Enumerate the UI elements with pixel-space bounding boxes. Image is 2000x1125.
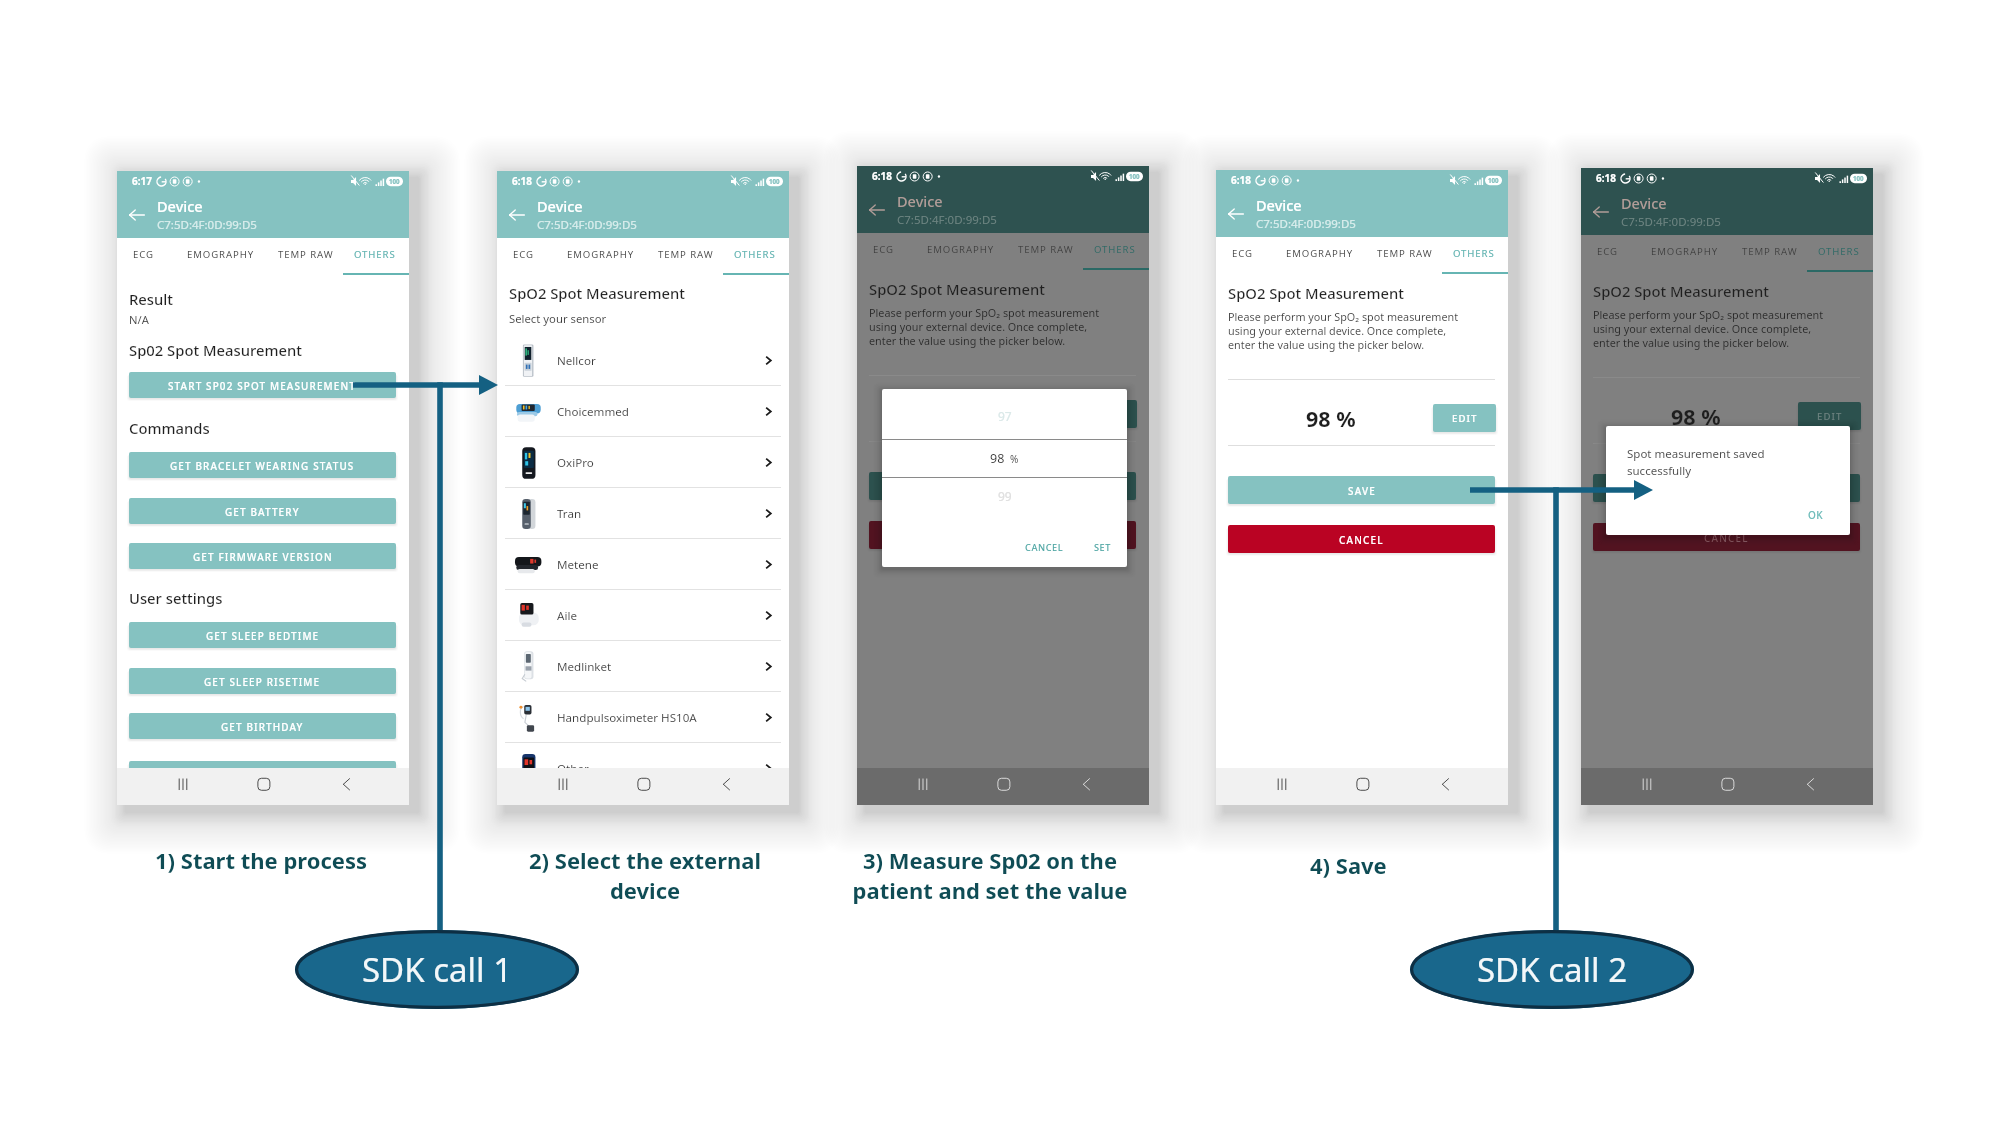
button[interactable]: OTHERS: [1805, 235, 1873, 268]
button[interactable]: Back: [125, 203, 149, 227]
staticText: Device: [897, 191, 943, 211]
staticText: GET BIRTHDAY: [221, 720, 304, 733]
button[interactable]: Home: [955, 768, 1052, 805]
staticText: SpO2 Spot Measurement: [509, 283, 686, 303]
button[interactable]: Other: [497, 743, 789, 794]
button[interactable]: Back: [505, 203, 529, 227]
button[interactable]: OTHERS: [721, 238, 789, 271]
button[interactable]: Recent apps: [857, 768, 955, 805]
button[interactable]: Home: [595, 768, 692, 805]
button[interactable]: SDK call 1: [295, 930, 579, 1009]
staticText: ECG: [1232, 247, 1253, 260]
button[interactable]: CANCEL: [1593, 523, 1860, 551]
button[interactable]: EDIT: [1798, 402, 1861, 430]
staticText: Other: [557, 761, 589, 777]
button[interactable]: TEMP RAW: [271, 238, 341, 271]
button[interactable]: ECG: [117, 238, 170, 271]
button[interactable]: OxiPro: [497, 437, 789, 488]
button[interactable]: Recent apps: [1581, 768, 1679, 805]
button[interactable]: Nellcor: [497, 335, 789, 386]
staticText: 97: [998, 408, 1012, 424]
button[interactable]: CANCEL: [869, 521, 1136, 549]
button[interactable]: EMOGRAPHY: [550, 238, 651, 271]
button[interactable]: GET FIRMWARE VERSION: [129, 543, 396, 569]
button[interactable]: CANCEL: [1228, 525, 1495, 553]
staticText: OK: [1808, 508, 1824, 522]
button[interactable]: Metene: [497, 539, 789, 590]
staticText: OTHERS: [1818, 245, 1860, 258]
button[interactable]: OK: [1808, 508, 1824, 522]
button[interactable]: OTHERS: [341, 238, 409, 271]
button[interactable]: Medlinket: [497, 641, 789, 692]
button[interactable]: EDIT: [1433, 404, 1496, 432]
button[interactable]: TEMP RAW: [651, 238, 721, 271]
staticText: OTHERS: [734, 248, 776, 261]
staticText: Result: [129, 289, 173, 309]
button[interactable]: Home: [1679, 768, 1776, 805]
button[interactable]: Recent apps: [497, 768, 595, 805]
staticText: 4) Save: [1310, 850, 1387, 880]
button[interactable]: GET BIRTHDAY: [129, 713, 396, 739]
button[interactable]: Recent apps: [1216, 768, 1314, 805]
button[interactable]: OTHERS: [1440, 237, 1508, 270]
button[interactable]: Handpulsoximeter HS10A: [497, 692, 789, 743]
button[interactable]: Back: [692, 768, 789, 805]
button[interactable]: EDIT: [1074, 400, 1137, 428]
button[interactable]: Choicemmed: [497, 386, 789, 437]
staticText: 6:17: [132, 174, 152, 188]
button[interactable]: Back: [1224, 202, 1248, 226]
button[interactable]: SAVE: [869, 472, 1136, 500]
button[interactable]: Back: [865, 198, 889, 222]
button[interactable]: ECG: [1216, 237, 1269, 270]
button[interactable]: Back: [1589, 200, 1613, 224]
staticText: Nellcor: [557, 353, 596, 369]
button[interactable]: GET: [129, 761, 396, 787]
staticText: EMOGRAPHY: [567, 248, 635, 261]
button[interactable]: GET SLEEP RISETIME: [129, 668, 396, 694]
staticText: 6:18: [872, 169, 892, 183]
button[interactable]: Back: [312, 768, 409, 805]
button[interactable]: Back: [1052, 768, 1149, 805]
staticText: 100: [389, 177, 400, 185]
button[interactable]: SAVE: [1593, 474, 1860, 502]
button[interactable]: EMOGRAPHY: [1634, 235, 1735, 268]
button[interactable]: GET BRACELET WEARING STATUS: [129, 452, 396, 478]
button[interactable]: START SP02 SPOT MEASUREMENT: [129, 372, 396, 398]
staticText: Commands: [129, 418, 210, 438]
staticText: OxiPro: [557, 455, 594, 471]
button[interactable]: EMOGRAPHY: [170, 238, 271, 271]
button[interactable]: Tran: [497, 488, 789, 539]
button[interactable]: EMOGRAPHY: [910, 233, 1011, 266]
button[interactable]: SET: [1094, 541, 1111, 554]
button[interactable]: TEMP RAW: [1370, 237, 1440, 270]
staticText: 1) Start the process: [155, 845, 368, 875]
button[interactable]: Recent apps: [117, 768, 215, 805]
staticText: SAVE: [989, 480, 1017, 493]
staticText: Please perform your SpO₂ spot measuremen…: [1228, 309, 1459, 352]
button[interactable]: CANCEL: [1025, 541, 1064, 554]
button[interactable]: Back: [1411, 768, 1508, 805]
button[interactable]: TEMP RAW: [1735, 235, 1805, 268]
button[interactable]: Home: [1314, 768, 1411, 805]
button[interactable]: Aile: [497, 590, 789, 641]
button[interactable]: OTHERS: [1081, 233, 1149, 266]
button[interactable]: ECG: [1581, 235, 1634, 268]
staticText: GET FIRMWARE VERSION: [193, 550, 333, 563]
button[interactable]: SDK call 2: [1410, 930, 1694, 1009]
button[interactable]: TEMP RAW: [1011, 233, 1081, 266]
button[interactable]: EMOGRAPHY: [1269, 237, 1370, 270]
staticText: 100: [1129, 172, 1140, 180]
button[interactable]: Home: [215, 768, 312, 805]
button[interactable]: ECG: [497, 238, 550, 271]
button[interactable]: ECG: [857, 233, 910, 266]
button[interactable]: SAVE: [1228, 476, 1495, 504]
staticText: START SP02 SPOT MEASUREMENT: [168, 379, 357, 392]
button[interactable]: GET BATTERY: [129, 498, 396, 524]
staticText: C7:5D:4F:0D:99:D5: [1256, 216, 1356, 232]
staticText: Handpulsoximeter HS10A: [557, 710, 697, 726]
staticText: Device: [1621, 193, 1667, 213]
button[interactable]: GET SLEEP BEDTIME: [129, 622, 396, 648]
button[interactable]: Back: [1776, 768, 1873, 805]
staticText: 100: [769, 177, 780, 185]
